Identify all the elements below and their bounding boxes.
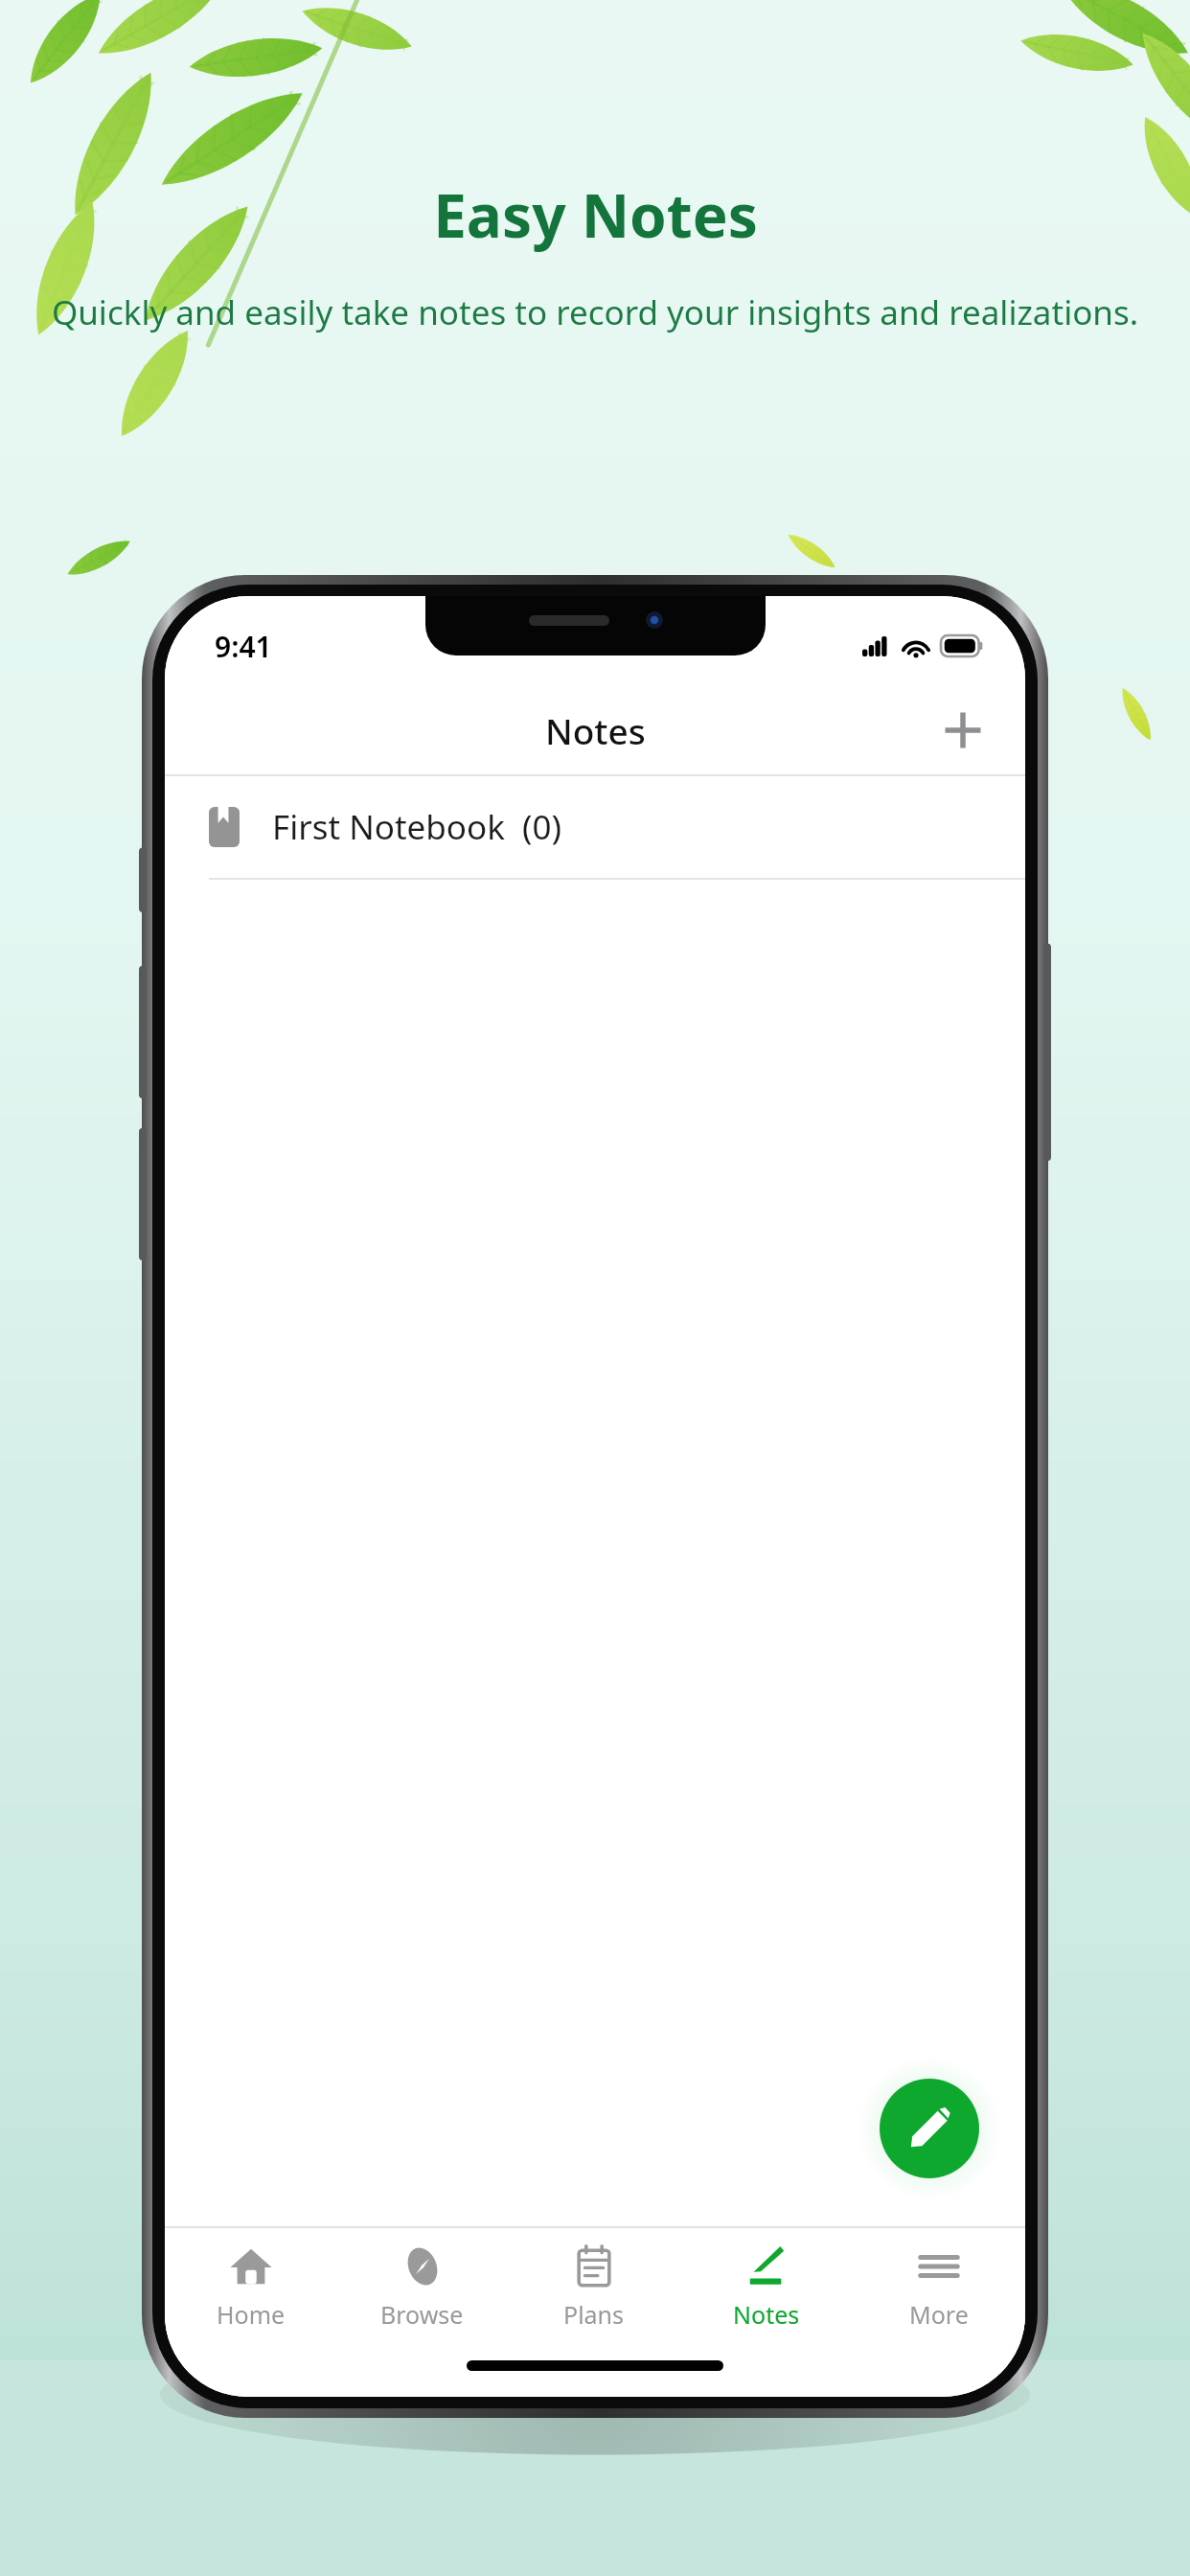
staticText: 9:41	[215, 627, 272, 666]
button[interactable]: Notes	[680, 2228, 853, 2345]
staticText: More	[909, 2298, 969, 2331]
button[interactable]: First Notebook (0)	[165, 776, 1025, 878]
button[interactable]: New note	[880, 2079, 979, 2178]
staticText: Home	[217, 2298, 286, 2331]
staticText: Plans	[563, 2298, 625, 2331]
button[interactable]: Browse	[336, 2228, 508, 2345]
staticText: Browse	[380, 2298, 464, 2331]
staticText: Notes	[733, 2298, 800, 2331]
staticText: Easy Notes	[433, 174, 758, 255]
staticText: Notes	[545, 706, 646, 754]
button[interactable]: More	[853, 2228, 1025, 2345]
button[interactable]: Plans	[508, 2228, 680, 2345]
staticText: First Notebook (0)	[272, 804, 562, 850]
staticText: Quickly and easily take notes to record …	[34, 289, 1156, 335]
button[interactable]: Home	[165, 2228, 336, 2345]
button[interactable]: Add notebook	[926, 693, 1000, 768]
